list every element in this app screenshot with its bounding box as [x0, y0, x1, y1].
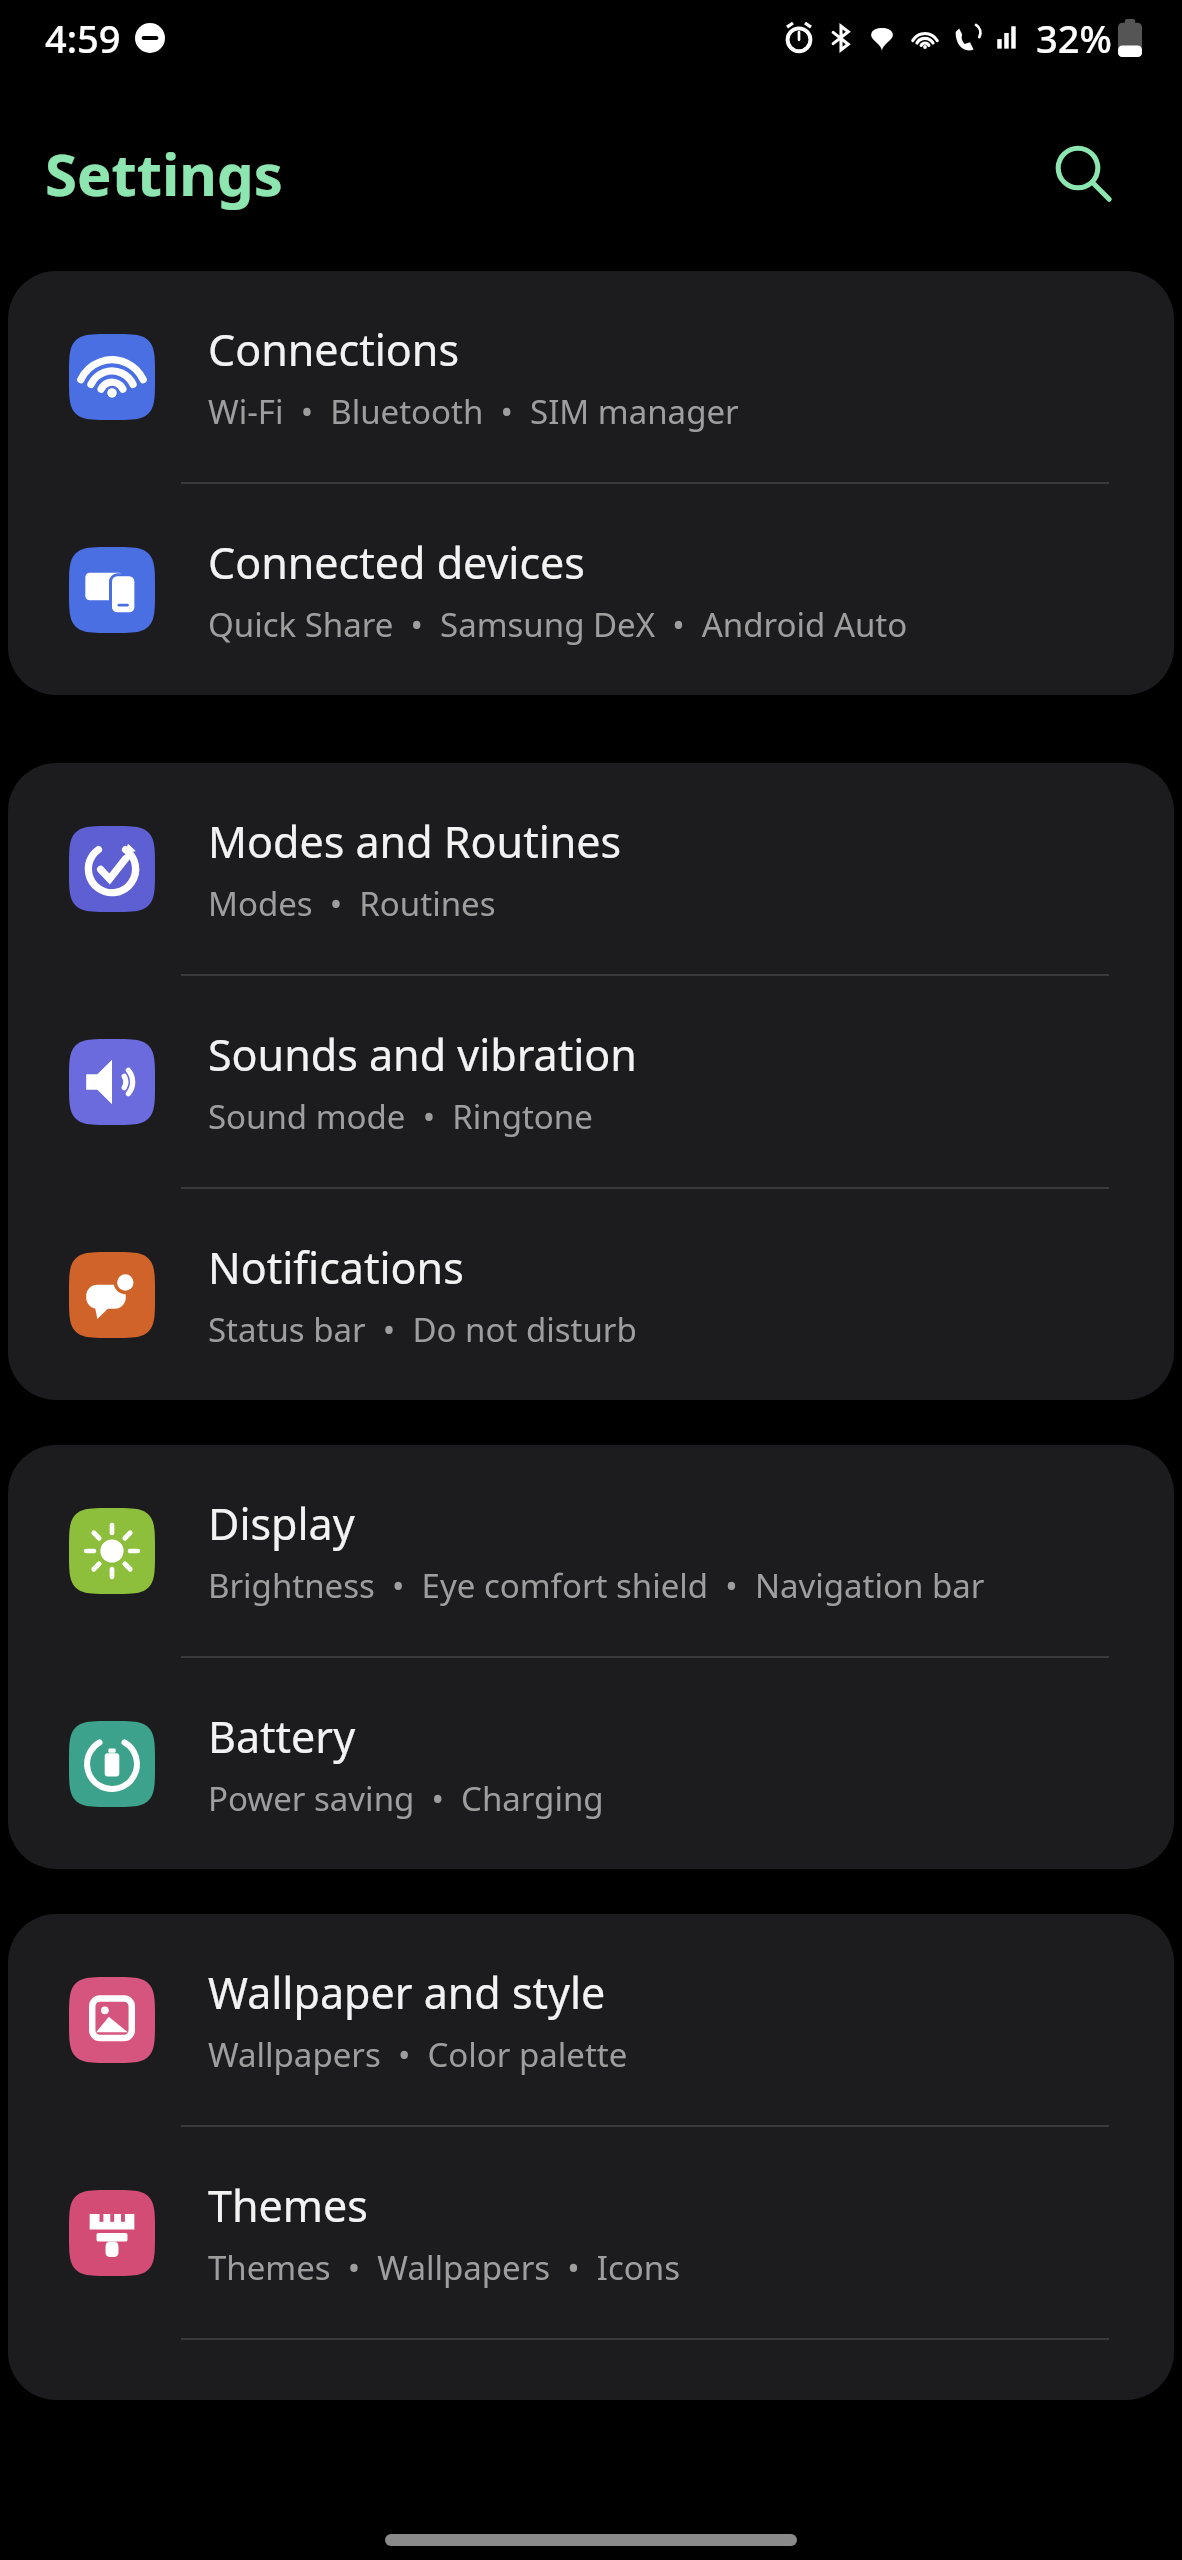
- staticText: Power saving • Charging: [208, 1776, 604, 1821]
- staticText: Wallpapers • Color palette: [208, 2032, 628, 2077]
- button[interactable]: Battery: [8, 1658, 1174, 1869]
- staticText: Modes and Routines: [208, 812, 622, 871]
- button[interactable]: Notifications: [8, 1189, 1174, 1400]
- staticText: Display: [208, 1494, 355, 1553]
- staticText: Connections: [208, 320, 460, 379]
- staticText: Sounds and vibration: [208, 1025, 637, 1084]
- staticText: Modes • Routines: [208, 881, 496, 926]
- staticText: 32%: [1036, 12, 1112, 64]
- staticText: Settings: [45, 134, 283, 213]
- button[interactable]: Modes and Routines: [8, 763, 1174, 974]
- button[interactable]: Wallpaper and style: [8, 1914, 1174, 2125]
- staticText: Notifications: [208, 1238, 464, 1297]
- staticText: Quick Share • Samsung DeX • Android Auto: [208, 602, 908, 647]
- button[interactable]: Search: [1044, 134, 1124, 214]
- button[interactable]: Display: [8, 1445, 1174, 1656]
- staticText: Wallpaper and style: [208, 1963, 606, 2022]
- staticText: Status bar • Do not disturb: [208, 1307, 637, 1352]
- staticText: Connected devices: [208, 533, 585, 592]
- staticText: Brightness • Eye comfort shield • Naviga…: [208, 1563, 985, 1608]
- button[interactable]: Sounds and vibration: [8, 976, 1174, 1187]
- staticText: Wi-Fi • Bluetooth • SIM manager: [208, 389, 739, 434]
- button[interactable]: Connections: [8, 271, 1174, 482]
- staticText: 4:59: [45, 12, 121, 64]
- staticText: Themes: [208, 2176, 368, 2235]
- staticText: Battery: [208, 1707, 356, 1766]
- button[interactable]: Connected devices: [8, 484, 1174, 695]
- staticText: Themes • Wallpapers • Icons: [208, 2245, 680, 2290]
- staticText: Sound mode • Ringtone: [208, 1094, 593, 1139]
- button[interactable]: Themes: [8, 2127, 1174, 2338]
